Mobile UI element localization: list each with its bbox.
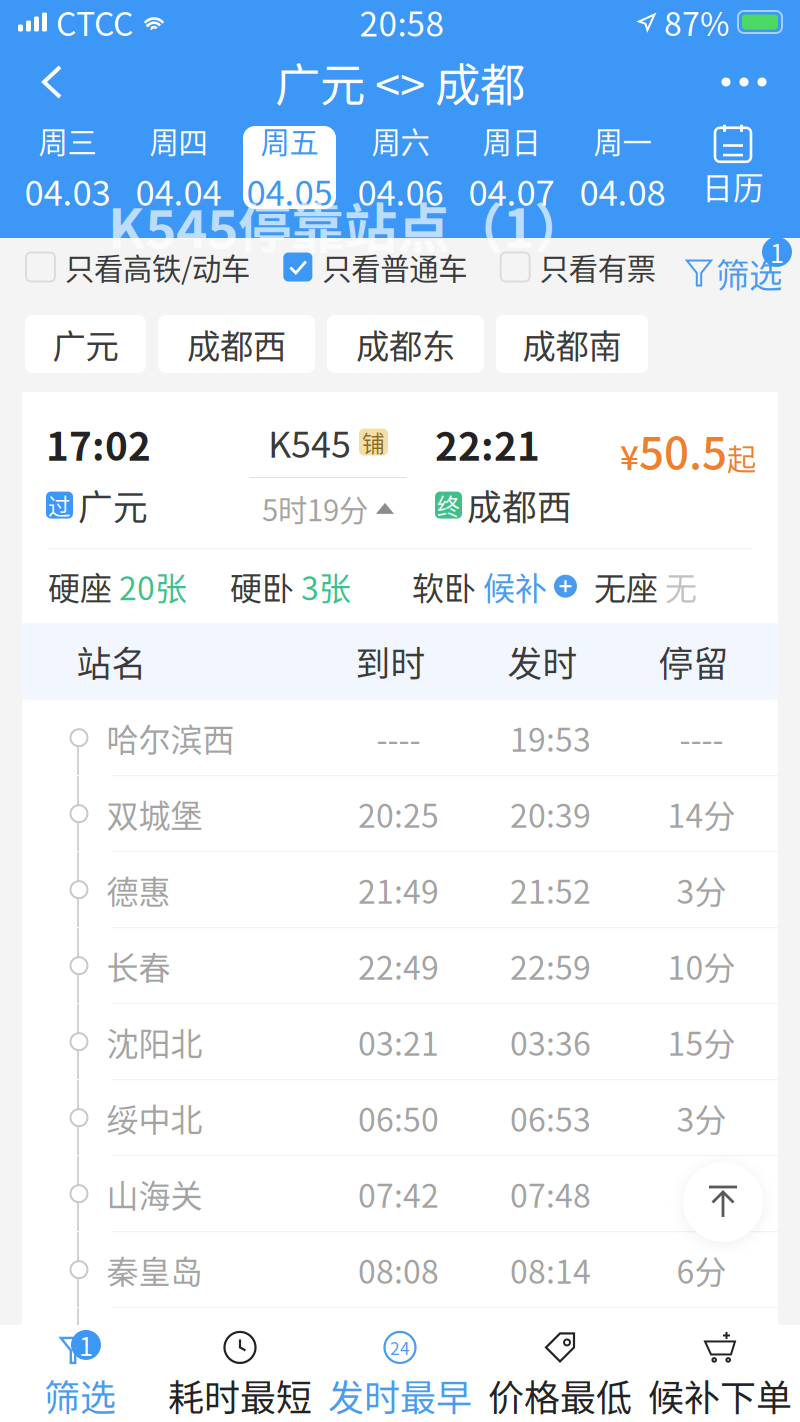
button[interactable]: 周五 (234, 120, 345, 215)
staticText: 筛选 (716, 249, 782, 297)
staticText: 22:59 (510, 942, 591, 989)
button[interactable]: More options (700, 44, 788, 120)
staticText: 周六 (371, 119, 429, 162)
staticText: 日历 (702, 164, 764, 208)
staticText: 绥中北 (106, 1094, 202, 1141)
staticText: 07:42 (358, 1170, 439, 1217)
staticText: 04.04 (135, 166, 221, 216)
staticText: 德惠 (106, 866, 170, 913)
staticText: K545 (268, 416, 351, 468)
button[interactable]: 成都东 (327, 315, 484, 373)
button[interactable]: Back (8, 44, 96, 120)
button[interactable]: 周三 (12, 120, 123, 215)
staticText: 20:39 (510, 790, 591, 837)
staticText: 04.08 (579, 166, 665, 216)
staticText: 发时最早 (328, 1369, 472, 1421)
staticText: 21:52 (510, 866, 591, 913)
staticText: 广元 (78, 480, 148, 530)
staticText: 04.05 (246, 166, 332, 216)
staticText: 成都西 (467, 480, 572, 530)
staticText: 终 (437, 489, 460, 521)
staticText: 14分 (667, 790, 735, 837)
staticText: 04.03 (24, 166, 110, 216)
button[interactable]: 只看有票 (501, 247, 656, 287)
staticText: 周一 (593, 119, 651, 162)
staticText: 06:50 (358, 1094, 439, 1141)
staticText: 硬卧 (230, 563, 294, 609)
staticText: 08:14 (510, 1246, 591, 1293)
staticText: 价格最低 (488, 1369, 632, 1421)
staticText: 周四 (149, 119, 207, 162)
staticText: 广元 (52, 320, 118, 368)
staticText: ---- (679, 714, 723, 761)
staticText: 硬座 (48, 563, 112, 609)
staticText: 秦皇岛 (106, 1246, 202, 1293)
staticText: 成都东 (356, 320, 455, 368)
button[interactable]: 筛选 (689, 237, 792, 297)
staticText: 21:49 (358, 866, 439, 913)
button[interactable]: 周一 (567, 120, 678, 215)
button[interactable]: 1 (0, 1325, 160, 1422)
staticText: 03:21 (358, 1018, 439, 1065)
staticText: 只看有票 (540, 246, 656, 288)
staticText: 软卧 (412, 563, 476, 609)
staticText: 20:58 (359, 0, 444, 46)
staticText: 19:53 (510, 714, 591, 761)
staticText: CTCC (56, 0, 133, 45)
staticText: 周三 (38, 119, 96, 162)
staticText: 08:39 (510, 1322, 591, 1369)
staticText: 17:02 (46, 416, 151, 472)
staticText: 成都西 (187, 320, 286, 368)
staticText: 6分 (676, 1246, 726, 1293)
staticText: 无 (665, 563, 697, 609)
staticText: 3分 (676, 1322, 726, 1369)
staticText: K545停靠站点（1） (108, 186, 587, 264)
staticText: 只看高铁/动车 (65, 246, 250, 288)
staticText: 50.5 (639, 418, 727, 482)
staticText: 3张 (301, 563, 351, 609)
staticText: 08:08 (358, 1246, 439, 1293)
button[interactable]: 日历 (678, 126, 788, 209)
staticText: 周日 (482, 119, 540, 162)
staticText: 成都南 (522, 320, 621, 368)
staticText: 候补 (483, 563, 547, 609)
staticText: 广元 <> 成都 (275, 49, 525, 115)
button[interactable]: 耗时最短 (160, 1325, 320, 1422)
button[interactable]: 24 (320, 1325, 480, 1422)
button[interactable]: 价格最低 (480, 1325, 640, 1422)
staticText: 哈尔滨西 (106, 714, 234, 761)
staticText: 87% (664, 0, 729, 45)
staticText: ---- (376, 714, 420, 761)
button[interactable]: 只看高铁/动车 (26, 247, 250, 287)
button[interactable]: 周六 (345, 120, 456, 215)
staticText: 1 (79, 1327, 93, 1363)
staticText: 候补下单 (648, 1369, 792, 1421)
staticText: 到时 (355, 637, 425, 687)
staticText: 15分 (667, 1018, 735, 1065)
staticText: 04.06 (357, 166, 443, 216)
staticText: 耗时最短 (168, 1369, 312, 1421)
staticText: 沈阳北 (106, 1018, 202, 1065)
staticText: 5时19分 (262, 487, 368, 530)
staticText: 无座 (594, 563, 658, 609)
staticText: 03:36 (510, 1018, 591, 1065)
staticText: 双城堡 (106, 790, 202, 837)
button[interactable]: 成都南 (496, 315, 648, 373)
button[interactable]: Scroll to top (683, 1162, 763, 1242)
staticText: 停留 (658, 637, 728, 687)
button[interactable]: 候补下单 (640, 1325, 800, 1422)
staticText: ¥ (620, 431, 639, 480)
button[interactable]: 周日 (456, 120, 567, 215)
button[interactable]: 只看普通车 (283, 247, 467, 287)
staticText: 站名 (76, 637, 146, 687)
button[interactable]: 广元 (25, 315, 146, 373)
staticText: 10分 (667, 942, 735, 989)
button[interactable]: 周四 (123, 120, 234, 215)
staticText: 山海关 (106, 1170, 202, 1217)
button[interactable]: 成都西 (158, 315, 315, 373)
staticText: 发时 (507, 637, 577, 687)
staticText: 起 (727, 436, 756, 479)
staticText: 04.07 (468, 166, 554, 216)
staticText: 08:36 (358, 1322, 439, 1369)
